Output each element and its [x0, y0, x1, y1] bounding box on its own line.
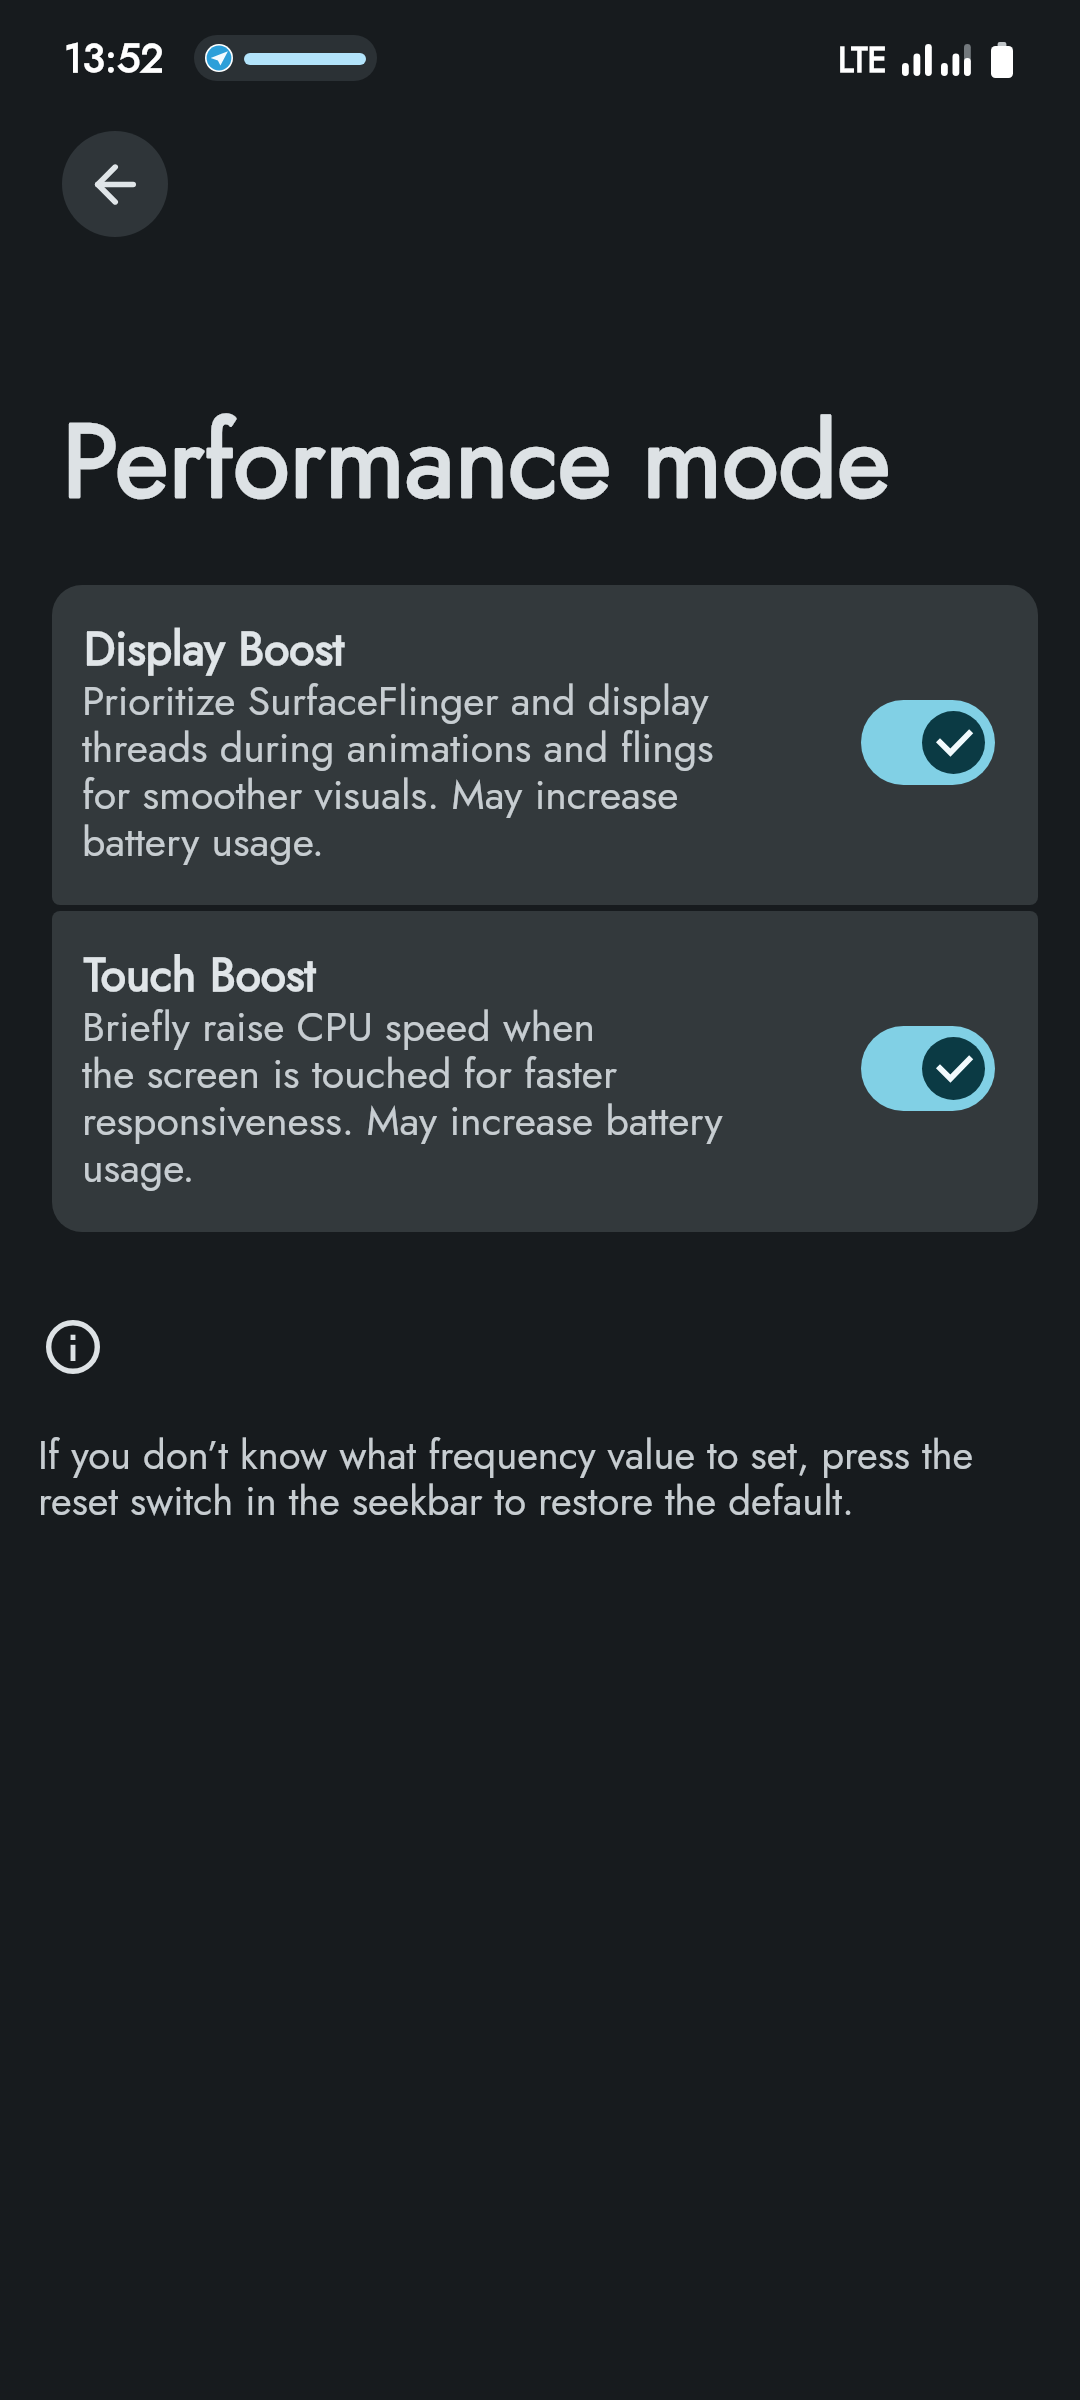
staticText: Display Boost: [84, 624, 344, 680]
button[interactable]: Telegram upload progress: [194, 35, 377, 81]
button[interactable]: Back: [62, 131, 168, 237]
staticText: threads during animations and flings: [82, 727, 714, 774]
button[interactable]: Display Boost: [52, 585, 1038, 905]
button[interactable]: Touch Boost: [52, 911, 1038, 1232]
staticText: Prioritize SurfaceFlinger and display: [82, 680, 709, 727]
staticText: for smoother visuals. May increase: [82, 774, 679, 821]
staticText: usage.: [82, 1147, 195, 1194]
staticText: LTE: [838, 41, 887, 83]
staticText: the screen is touched for faster: [82, 1053, 618, 1100]
button[interactable]: Touch Boost, on: [861, 1026, 995, 1111]
staticText: Briefly raise CPU speed when: [82, 1006, 595, 1053]
staticText: Touch Boost: [84, 950, 316, 1006]
other: Information: [46, 1320, 100, 1374]
staticText: battery usage.: [82, 821, 325, 868]
staticText: 13:52: [64, 35, 164, 85]
staticText: reset switch in the seekbar to restore t…: [38, 1481, 855, 1527]
staticText: responsiveness. May increase battery: [82, 1100, 723, 1147]
staticText: Performance mode: [62, 416, 891, 526]
staticText: Performance mode: [62, 416, 891, 526]
button[interactable]: Display Boost, on: [861, 700, 995, 785]
staticText: If you don’t know what frequency value t…: [38, 1435, 974, 1481]
